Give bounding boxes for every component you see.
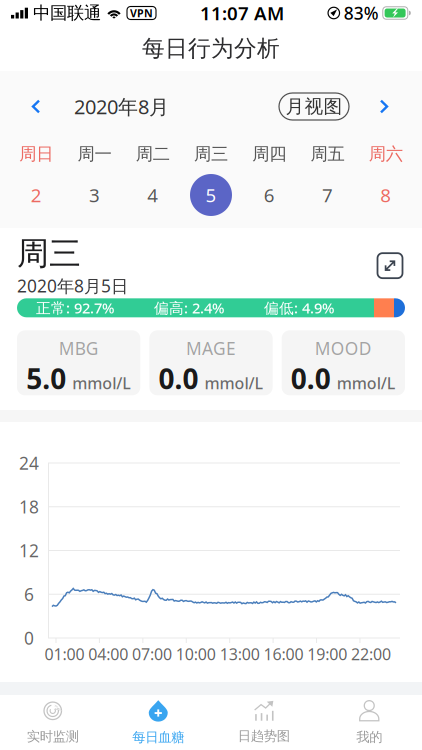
button[interactable]: 3 — [65, 171, 124, 219]
staticText: 每日行为分析 — [142, 35, 280, 62]
staticText: 24 — [19, 451, 39, 474]
staticText: 周四 — [252, 143, 286, 165]
staticText: 07:00 — [132, 643, 172, 665]
staticText: MAGE — [186, 337, 236, 360]
staticText: 13:00 — [220, 643, 260, 665]
staticText: mmol/L — [337, 372, 396, 394]
button[interactable]: 5 — [182, 171, 240, 219]
button[interactable]: Expand — [375, 251, 405, 281]
staticText: 周六 — [369, 143, 403, 165]
staticText: 5 — [205, 183, 216, 207]
staticText: 19:00 — [307, 643, 347, 665]
staticText: 2020年8月5日 — [17, 274, 128, 297]
staticText: 16:00 — [263, 643, 303, 665]
button[interactable]: 2 — [7, 171, 65, 219]
button[interactable]: 实时监测 — [0, 695, 105, 750]
staticText: 6 — [24, 583, 34, 606]
button[interactable]: 我的 — [316, 695, 422, 750]
staticText: 偏低: 4.9% — [264, 298, 334, 318]
staticText: 周日 — [19, 143, 53, 165]
staticText: 12 — [19, 539, 39, 562]
button[interactable]: Previous month — [14, 84, 58, 128]
staticText: 中国联通 — [33, 2, 101, 24]
staticText: 周二 — [136, 143, 170, 165]
staticText: 周三 — [17, 234, 81, 273]
button[interactable]: 每日血糖 — [105, 695, 211, 750]
staticText: 日趋势图 — [238, 728, 290, 744]
staticText: 正常: 92.7% — [36, 298, 114, 318]
button[interactable]: 8 — [357, 171, 415, 219]
staticText: 周三 — [194, 143, 228, 165]
staticText: 实时监测 — [27, 728, 79, 745]
staticText: 7 — [322, 183, 333, 207]
staticText: MOOD — [315, 337, 372, 360]
staticText: 偏高: 2.4% — [154, 298, 224, 318]
staticText: 我的 — [356, 729, 382, 745]
button[interactable]: 4 — [124, 171, 182, 219]
staticText: mmol/L — [72, 372, 131, 394]
staticText: 周一 — [77, 143, 111, 165]
staticText: 2 — [31, 183, 42, 207]
staticText: 11:07 AM — [200, 1, 284, 25]
staticText: MBG — [59, 337, 99, 360]
staticText: 6 — [264, 183, 275, 207]
staticText: 8 — [380, 183, 391, 207]
staticText: 0 — [24, 626, 34, 649]
staticText: mmol/L — [204, 372, 263, 394]
staticText: 0.0 — [158, 360, 198, 397]
staticText: 月视图 — [285, 95, 342, 118]
staticText: 01:00 — [44, 643, 84, 665]
button[interactable]: Next month — [362, 84, 406, 128]
staticText: 2020年8月 — [74, 93, 169, 120]
staticText: 0.0 — [291, 360, 331, 397]
staticText: 22:00 — [351, 643, 391, 665]
staticText: 5.0 — [26, 360, 66, 397]
staticText: 83% — [344, 1, 379, 24]
staticText: 18 — [19, 495, 39, 518]
staticText: 04:00 — [88, 643, 128, 665]
staticText: 每日血糖 — [132, 729, 184, 745]
button[interactable]: 7 — [298, 171, 357, 219]
button[interactable]: 6 — [240, 171, 298, 219]
staticText: VPN — [130, 6, 153, 20]
staticText: 10:00 — [176, 643, 216, 665]
staticText: 4 — [147, 183, 158, 207]
staticText: 3 — [89, 183, 100, 207]
button[interactable]: 月视图 — [279, 93, 349, 120]
button[interactable]: 日趋势图 — [211, 695, 316, 750]
staticText: 周五 — [311, 143, 345, 165]
